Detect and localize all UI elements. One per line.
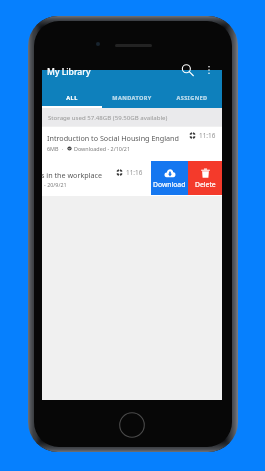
- staticText: Downloaded - 2/10/21: [74, 145, 130, 152]
- staticText: MANDATORY: [112, 94, 152, 102]
- staticText: ASSIGNED: [176, 94, 208, 102]
- staticText: ·: [59, 145, 67, 152]
- staticText: Download: [153, 180, 186, 189]
- staticText: My Library: [47, 66, 91, 78]
- button[interactable]: More options: [201, 62, 217, 78]
- staticText: Delete: [195, 180, 216, 189]
- button[interactable]: Download: [151, 161, 188, 195]
- button[interactable]: My Library: [42, 66, 222, 80]
- button[interactable]: Search: [179, 62, 195, 78]
- staticText: 6MB: [47, 145, 59, 152]
- staticText: s in the workplace: [41, 170, 103, 180]
- button[interactable]: ALL: [42, 88, 102, 108]
- button[interactable]: Introduction to Social Housing England: [42, 127, 222, 160]
- button[interactable]: ASSIGNED: [162, 88, 222, 108]
- staticText: 11:16: [126, 168, 143, 177]
- staticText: Introduction to Social Housing England: [47, 133, 179, 143]
- button[interactable]: MANDATORY: [102, 88, 162, 108]
- staticText: 11:16: [199, 131, 216, 140]
- button[interactable]: Delete: [188, 161, 222, 195]
- staticText: ALL: [66, 94, 78, 102]
- staticText: - 20/9/21: [44, 181, 67, 188]
- staticText: Storage used 57.48GB (59.50GB available): [48, 113, 168, 121]
